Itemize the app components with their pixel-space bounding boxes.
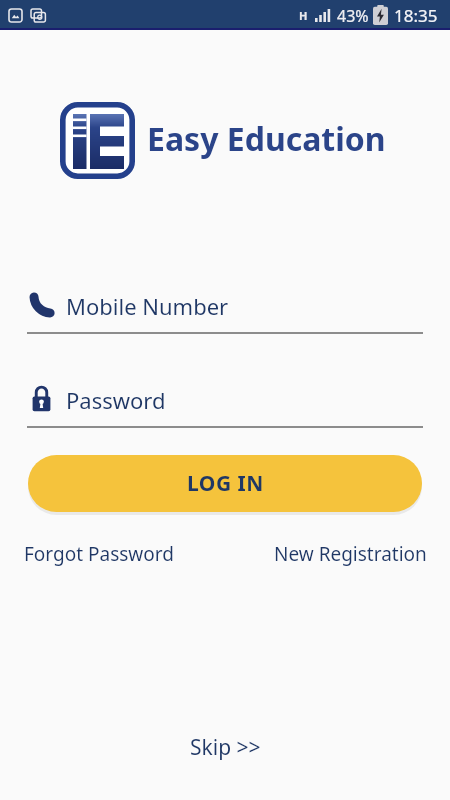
button[interactable]: New Registration [274, 541, 427, 567]
staticText: Easy Education [147, 117, 386, 161]
staticText: Forgot Password [24, 541, 174, 567]
button[interactable]: Forgot Password [24, 541, 174, 567]
staticText: Password [66, 385, 166, 415]
button[interactable]: Skip >> [190, 733, 261, 762]
button[interactable]: LOG IN [28, 455, 422, 512]
staticText: New Registration [274, 541, 427, 567]
staticText: 43% [337, 5, 369, 27]
staticText: Mobile Number [66, 291, 229, 321]
staticText: Skip >> [190, 733, 261, 762]
staticText: 18:35 [394, 4, 438, 27]
staticText: H [299, 8, 308, 23]
staticText: LOG IN [187, 469, 264, 498]
